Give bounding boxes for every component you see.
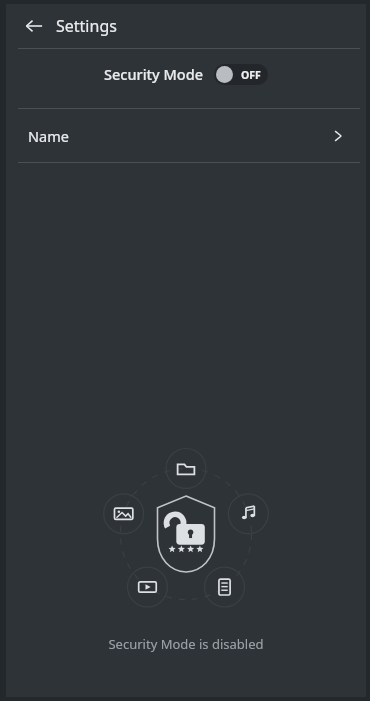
- staticText: Name: [28, 126, 69, 146]
- staticText: OFF: [241, 68, 261, 82]
- staticText: Security Mode is disabled: [6, 635, 366, 653]
- staticText: Settings: [56, 15, 117, 37]
- staticText: Security Mode: [104, 64, 204, 84]
- button[interactable]: Name: [6, 109, 366, 162]
- button[interactable]: Security Mode: [6, 49, 366, 99]
- button[interactable]: Security Mode toggle, off: [214, 64, 268, 85]
- button[interactable]: Back: [18, 10, 50, 42]
